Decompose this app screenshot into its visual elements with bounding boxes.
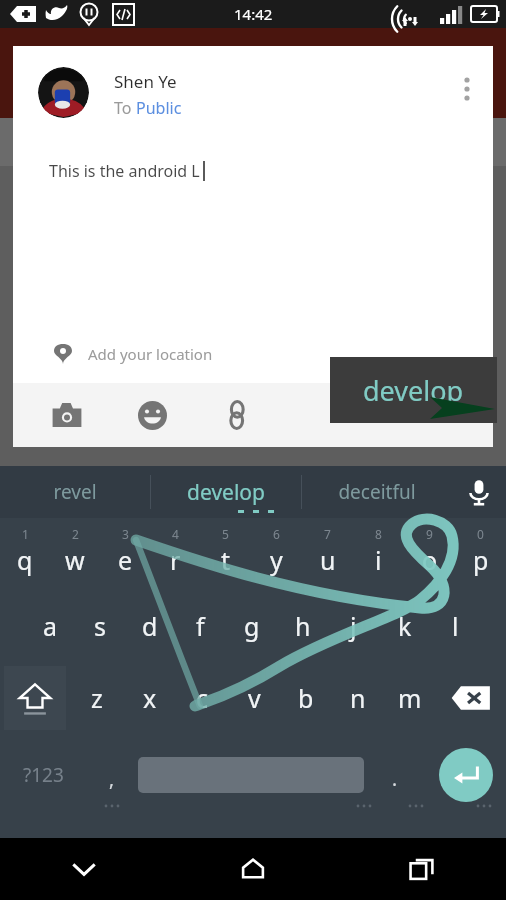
staticText: 7 (324, 526, 331, 542)
staticText: 3 (122, 526, 129, 542)
staticText: c (196, 681, 209, 715)
button[interactable]: 9 (404, 518, 455, 590)
button[interactable]: Add emoji (124, 387, 180, 443)
button[interactable]: k (379, 590, 430, 662)
staticText: i (375, 543, 382, 577)
staticText: 14:42 (234, 4, 273, 24)
staticText: o (422, 543, 438, 577)
staticText: revel (53, 479, 97, 505)
button[interactable]: Voice input (452, 466, 506, 518)
button[interactable]: Add link (209, 387, 265, 443)
staticText: This is the android L (49, 160, 200, 182)
button[interactable]: l (430, 590, 481, 662)
staticText: j (350, 609, 357, 643)
button[interactable]: revel (0, 466, 150, 518)
staticText: develop (187, 478, 265, 507)
button[interactable]: deceitful (302, 466, 452, 518)
button[interactable]: j (328, 590, 379, 662)
staticText: deceitful (338, 479, 416, 505)
staticText: 8 (375, 526, 382, 542)
button[interactable]: z (70, 662, 123, 734)
button[interactable]: Enter (439, 748, 493, 802)
button[interactable]: Add photo (39, 387, 95, 443)
staticText: 0 (477, 526, 484, 542)
staticText: v (248, 681, 261, 715)
staticText: l (452, 609, 459, 643)
staticText: z (91, 681, 103, 715)
button[interactable]: 2 (50, 518, 100, 590)
staticText: q (17, 543, 33, 577)
staticText: d (142, 609, 158, 643)
button[interactable]: h (277, 590, 328, 662)
button[interactable]: 8 (353, 518, 404, 590)
button[interactable]: b (280, 662, 332, 734)
staticText: e (118, 543, 133, 577)
button[interactable]: Back (0, 838, 168, 900)
button[interactable]: 1 (0, 518, 50, 590)
button[interactable]: s (75, 590, 125, 662)
button[interactable]: x (123, 662, 176, 734)
staticText: p (473, 543, 489, 577)
button[interactable]: Recent apps (337, 838, 506, 900)
staticText: s (94, 609, 106, 643)
staticText: develop (363, 372, 464, 409)
button[interactable]: 7 (302, 518, 353, 590)
button[interactable]: 6 (251, 518, 302, 590)
staticText: b (298, 681, 314, 715)
staticText: r (170, 543, 181, 577)
staticText: ?123 (23, 762, 64, 788)
staticText: y (270, 543, 283, 577)
staticText: , (109, 766, 115, 792)
button[interactable]: m (384, 662, 436, 734)
button[interactable]: g (226, 590, 277, 662)
staticText: Shen Ye (114, 70, 177, 93)
button[interactable]: Backspace (436, 662, 506, 734)
staticText: 1 (22, 526, 29, 542)
button[interactable]: 5 (200, 518, 251, 590)
button[interactable]: . (364, 734, 426, 816)
staticText: x (143, 681, 157, 715)
staticText: n (350, 681, 366, 715)
button[interactable]: Home (168, 838, 337, 900)
staticText: 5 (222, 526, 229, 542)
button[interactable]: Shift (4, 666, 66, 730)
staticText: a (43, 609, 58, 643)
staticText: 6 (273, 526, 280, 542)
staticText: 4 (172, 526, 179, 542)
button[interactable]: Public (136, 97, 182, 119)
button[interactable]: c (176, 662, 228, 734)
staticText: t (221, 543, 231, 577)
staticText: h (295, 609, 311, 643)
staticText: 2 (72, 526, 79, 542)
staticText: f (196, 609, 205, 643)
staticText: m (398, 681, 422, 715)
staticText: Add your location (88, 344, 213, 364)
button[interactable]: d (125, 590, 175, 662)
staticText: 9 (426, 526, 433, 542)
staticText: To (114, 97, 136, 119)
staticText: . (392, 766, 398, 792)
button[interactable] (38, 67, 89, 118)
button[interactable]: ?123 (0, 734, 86, 816)
button[interactable]: develop (151, 466, 301, 518)
staticText: k (398, 609, 412, 643)
button[interactable]: 4 (150, 518, 200, 590)
button[interactable]: More options (445, 67, 489, 111)
button[interactable]: 0 (455, 518, 506, 590)
staticText: u (320, 543, 336, 577)
button[interactable]: 3 (100, 518, 150, 590)
button[interactable]: f (175, 590, 226, 662)
button[interactable]: a (25, 590, 75, 662)
staticText: w (65, 543, 85, 577)
button[interactable]: n (332, 662, 384, 734)
staticText: g (244, 609, 260, 643)
button[interactable]: v (228, 662, 280, 734)
button[interactable]: , (86, 734, 138, 816)
button[interactable]: Add your location (53, 325, 493, 383)
